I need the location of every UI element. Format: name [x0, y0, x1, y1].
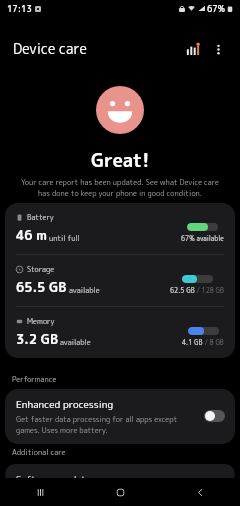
- staticText: Software update: [16, 473, 91, 484]
- staticText: / 128 GB: [195, 286, 224, 295]
- staticText: 67% available: [181, 234, 224, 243]
- button[interactable]: Recent apps: [0, 478, 80, 506]
- button[interactable]: More options: [205, 36, 231, 62]
- staticText: 17:13: [7, 3, 32, 15]
- staticText: 65.5 GB: [16, 278, 67, 296]
- staticText: Enhanced processing: [16, 397, 114, 411]
- button[interactable]: Software update: [5, 464, 235, 484]
- staticText: Additional care: [12, 447, 66, 457]
- button[interactable]: Home: [80, 478, 160, 506]
- button[interactable]: Enhanced processing toggle: [204, 410, 225, 422]
- staticText: 67%: [207, 3, 225, 15]
- staticText: Storage: [27, 264, 55, 274]
- staticText: 62.5 GB: [170, 286, 195, 295]
- button[interactable]: Battery: [5, 203, 235, 254]
- staticText: 46 m: [16, 226, 47, 244]
- staticText: until full: [49, 233, 80, 243]
- staticText: Get faster data processing for all apps …: [16, 414, 178, 435]
- staticText: Device care: [13, 39, 87, 59]
- button[interactable]: Storage: [5, 255, 235, 306]
- staticText: 3.2 GB: [16, 330, 58, 348]
- staticText: Your care report has been updated. See w…: [8, 177, 232, 198]
- staticText: Performance: [12, 374, 57, 384]
- staticText: Battery: [27, 212, 54, 222]
- staticText: Memory: [27, 316, 55, 326]
- staticText: available: [60, 337, 91, 347]
- button[interactable]: Memory: [5, 307, 235, 358]
- button[interactable]: Enhanced processing: [5, 389, 235, 444]
- staticText: 4.1 GB: [182, 338, 203, 347]
- staticText: Great!: [91, 147, 150, 173]
- staticText: available: [69, 285, 100, 295]
- staticText: / 8 GB: [203, 338, 224, 347]
- button[interactable]: Usage statistics: [179, 36, 205, 62]
- button[interactable]: Back: [160, 478, 240, 506]
